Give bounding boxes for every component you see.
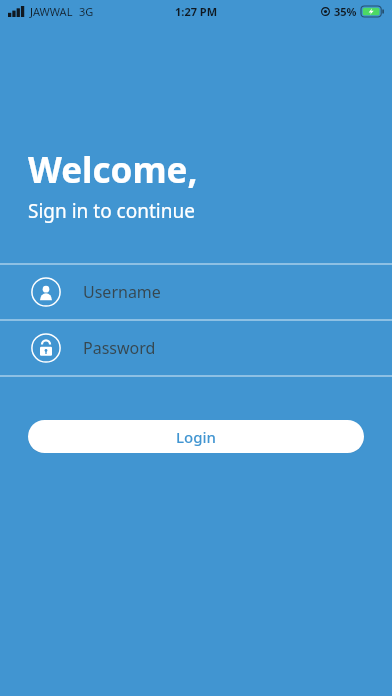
staticText: Password [83,337,156,359]
staticText: 3G [79,4,94,19]
staticText: 35% [334,4,357,19]
other: Username [31,277,61,307]
other: Password [31,333,61,363]
staticText: 1:27 PM [175,4,218,19]
button[interactable]: Username [0,265,392,319]
staticText: Welcome, [28,146,198,194]
staticText: Username [83,281,161,303]
button[interactable]: Login [28,420,364,453]
staticText: Login [176,427,216,447]
staticText: JAWWAL [30,4,73,19]
button[interactable]: Password [0,321,392,375]
staticText: Sign in to continue [28,198,195,224]
